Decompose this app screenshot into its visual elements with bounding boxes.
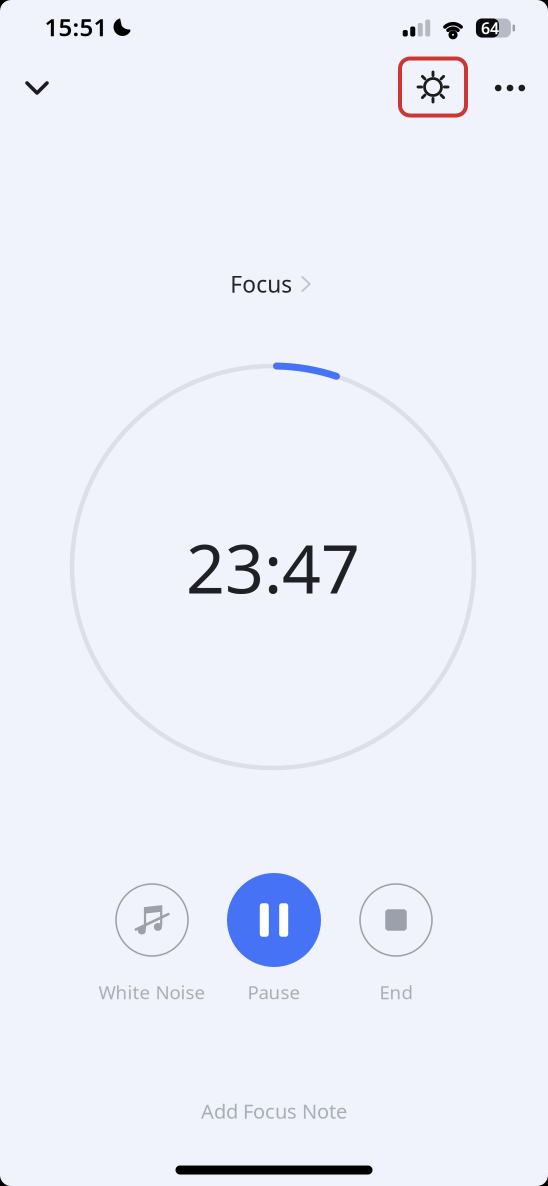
button[interactable]: End (311, 867, 481, 1017)
button[interactable]: Brightness (400, 58, 466, 115)
button[interactable]: Pause (189, 867, 359, 1017)
button[interactable]: White Noise (67, 867, 237, 1017)
staticText: Pause (247, 980, 300, 1004)
button[interactable]: More options (482, 60, 538, 116)
staticText: 23:47 (186, 522, 360, 612)
staticText: White Noise (98, 980, 205, 1004)
button[interactable]: Add Focus Note (173, 1084, 375, 1138)
staticText: 64 (481, 17, 499, 39)
button[interactable]: Dismiss (9, 60, 65, 116)
staticText: End (379, 980, 412, 1004)
staticText: 15:51 (44, 11, 107, 43)
staticText: Add Focus Note (201, 1098, 347, 1124)
button[interactable]: Focus (218, 261, 322, 307)
staticText: Focus (230, 269, 292, 299)
